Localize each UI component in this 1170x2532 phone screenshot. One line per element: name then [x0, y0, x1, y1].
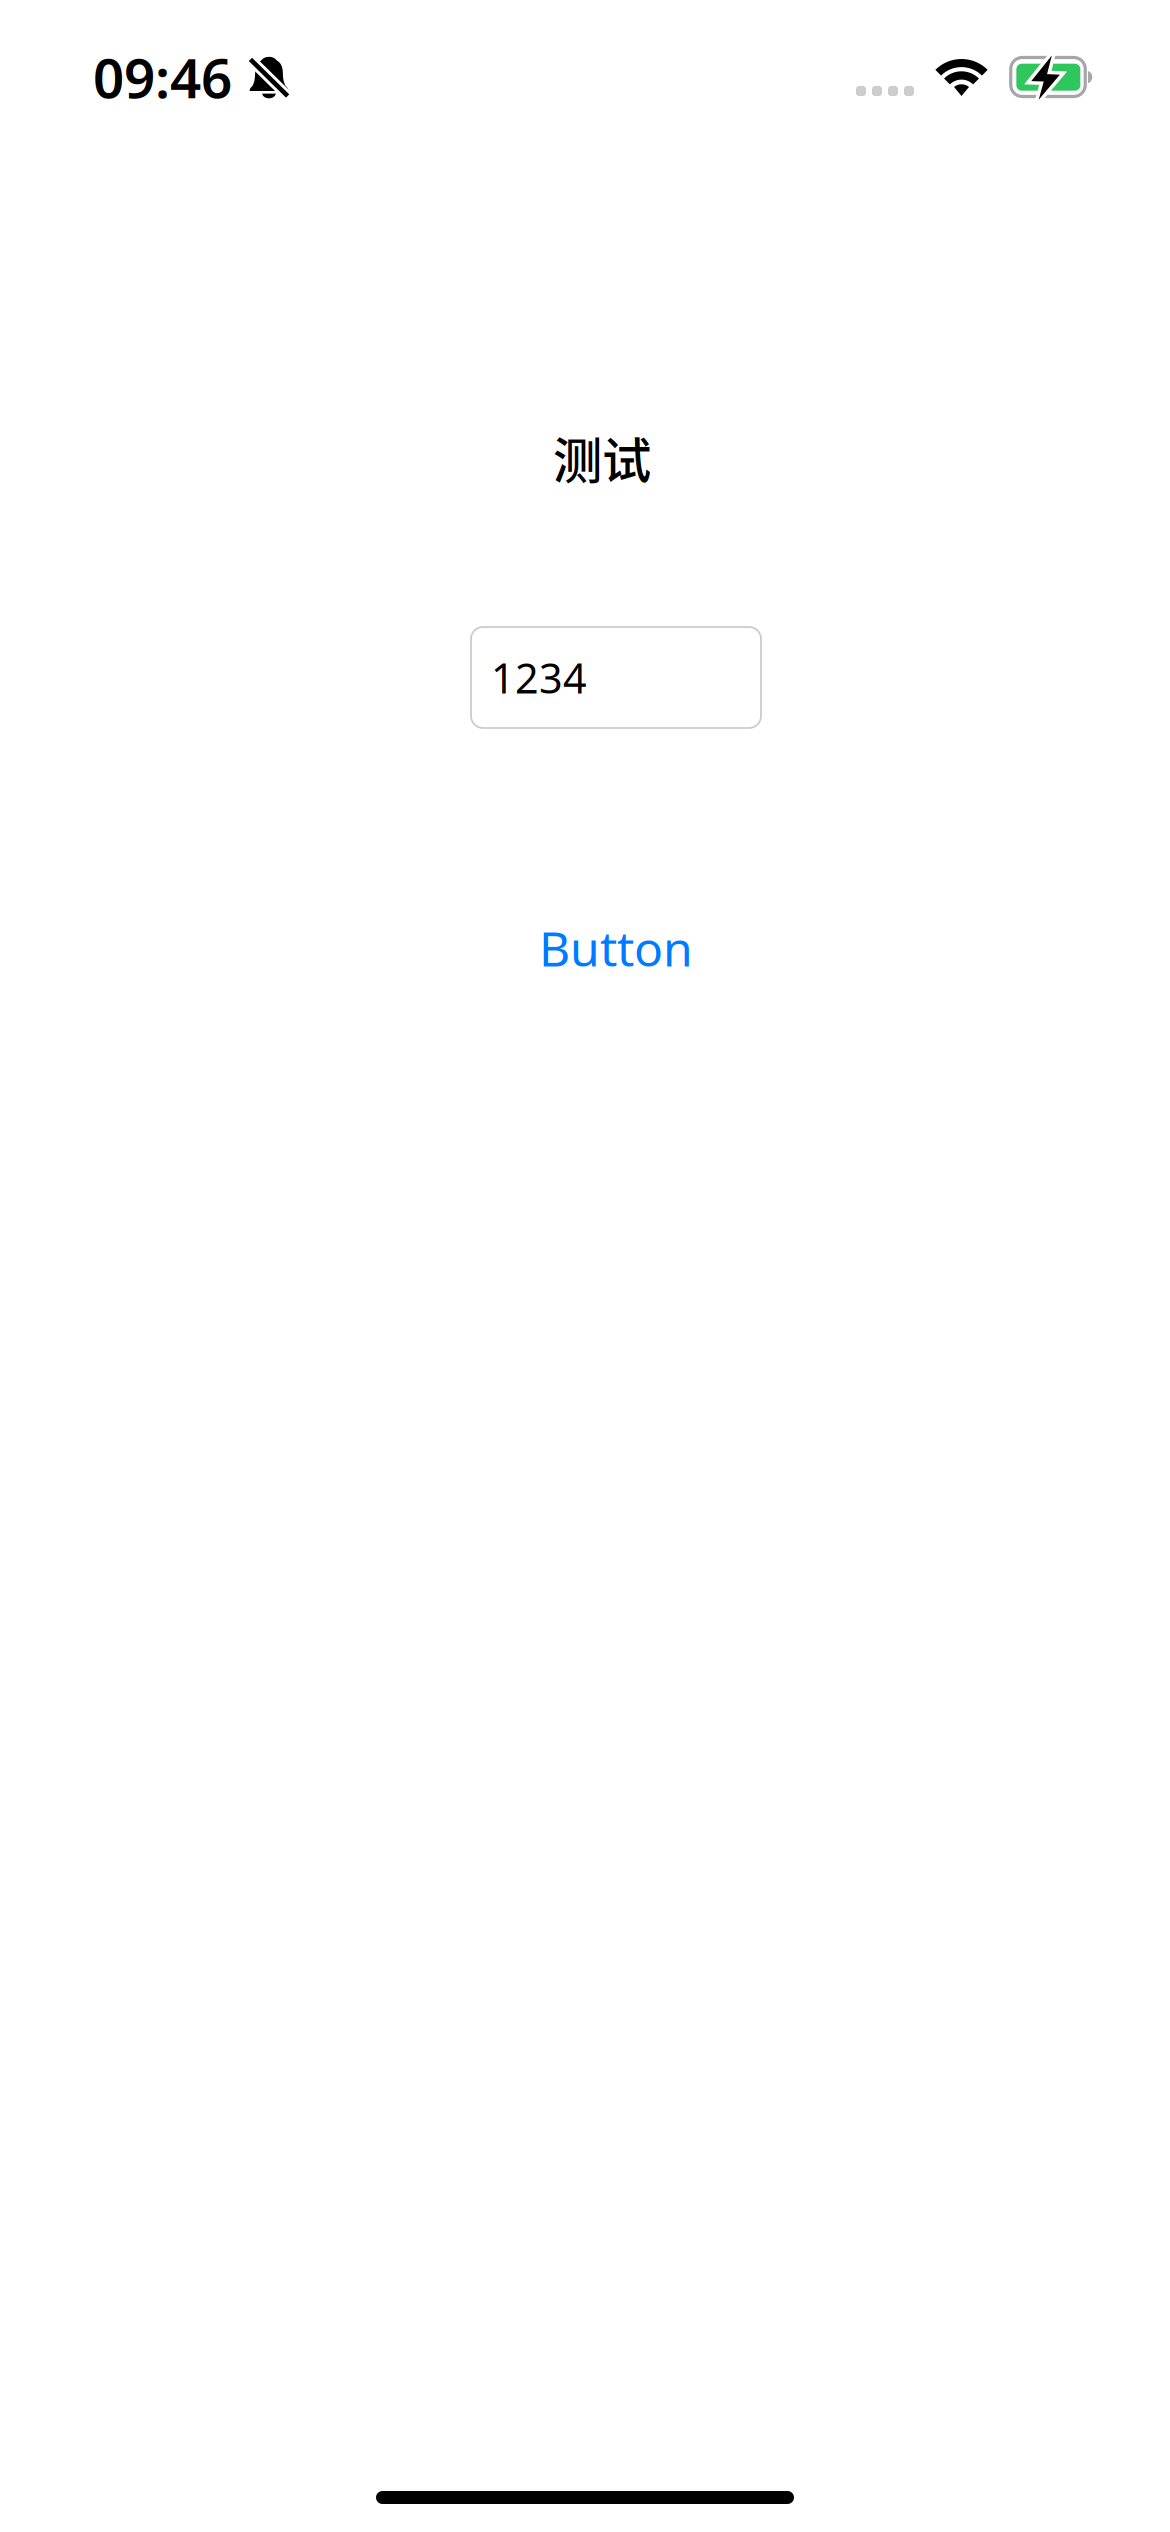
staticText: 1234 [491, 649, 587, 706]
button[interactable]: Button [471, 911, 761, 985]
button[interactable]: 1234 [471, 627, 761, 728]
staticText: Button [539, 915, 693, 981]
staticText: 测试 [553, 421, 651, 493]
staticText: 09:46 [93, 40, 232, 114]
